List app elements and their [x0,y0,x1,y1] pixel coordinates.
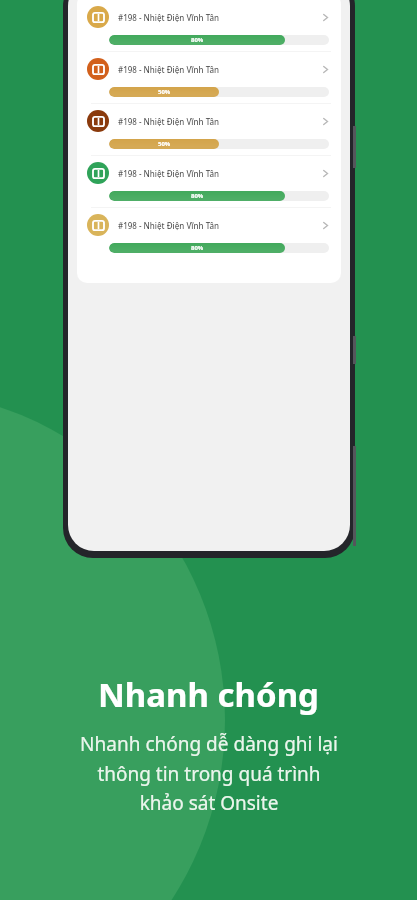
button[interactable]: #198 - Nhiệt Điện Vĩnh Tân [77,0,341,51]
staticText: #198 - Nhiệt Điện Vĩnh Tân [118,12,320,23]
staticText: #198 - Nhiệt Điện Vĩnh Tân [118,168,320,179]
staticText: 80% [191,36,204,44]
other: Open detail [320,168,331,179]
other: Open detail [320,220,331,231]
button[interactable]: #198 - Nhiệt Điện Vĩnh Tân [77,208,341,259]
staticText: #198 - Nhiệt Điện Vĩnh Tân [118,116,320,127]
other: Open detail [320,64,331,75]
staticText: Nhanh chóng dễ dàng ghi lại thông tin tr… [80,731,338,815]
button[interactable]: #198 - Nhiệt Điện Vĩnh Tân [77,156,341,207]
staticText: 50% [158,140,171,148]
staticText: 80% [191,192,204,200]
staticText: 80% [191,244,204,252]
other: Open detail [320,116,331,127]
button[interactable]: #198 - Nhiệt Điện Vĩnh Tân [77,104,341,155]
other: Open detail [320,12,331,23]
button[interactable]: #198 - Nhiệt Điện Vĩnh Tân [77,52,341,103]
staticText: #198 - Nhiệt Điện Vĩnh Tân [118,64,320,75]
staticText: Nhanh chóng [98,672,319,717]
staticText: 50% [158,88,171,96]
staticText: #198 - Nhiệt Điện Vĩnh Tân [118,220,320,231]
